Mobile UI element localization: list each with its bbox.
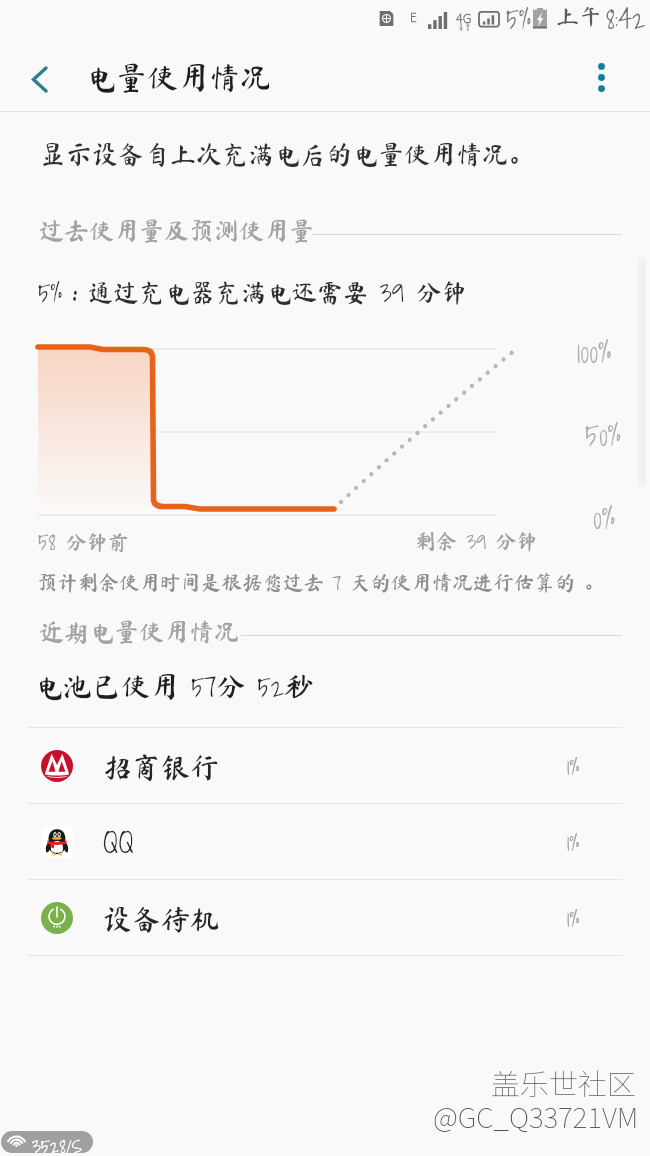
staticText: 剩余 39 分钟 (415, 524, 538, 558)
staticText: 电池已使用 57分 52秒 (34, 665, 314, 708)
staticText: 100% (577, 329, 612, 376)
staticText: 1% (567, 825, 580, 860)
button[interactable]: Back (11, 51, 67, 107)
button[interactable]: More options (575, 51, 627, 103)
staticText: 58 分钟前 (38, 524, 129, 559)
staticText: 招商银行 (103, 752, 220, 781)
staticText: @GC_Q33721VM (433, 1096, 639, 1137)
staticText: 显示设备自上次充满电后的电量使用情况。 (40, 141, 535, 167)
staticText: QQ (103, 818, 134, 866)
staticText: 上午 (556, 5, 602, 28)
staticText: 盖乐世社区 (491, 1061, 637, 1103)
button[interactable]: 设备待机 (0, 880, 650, 956)
staticText: 预计剩余使用时间是根据您过去 7 天的使用情况进行估算的 。 (37, 568, 605, 599)
staticText: 1% (567, 749, 580, 784)
staticText: 近期电量使用情况 (39, 619, 240, 644)
staticText: 1% (567, 901, 580, 936)
staticText: 5%：通过充电器充满电还需要 39 分钟 (38, 271, 467, 313)
staticText: 0% (593, 495, 616, 542)
staticText: 5% (506, 0, 532, 40)
staticText: 3528/S (32, 1131, 83, 1153)
staticText: 电量使用情况 (85, 62, 271, 93)
staticText: 50% (585, 412, 621, 459)
staticText: E (410, 8, 417, 25)
staticText: 4G (456, 8, 472, 27)
button[interactable]: 招商银行 (0, 728, 650, 804)
staticText: 8:42 (606, 0, 646, 40)
staticText: 设备待机 (103, 904, 220, 933)
staticText: 过去使用量及预测使用量 (39, 218, 315, 243)
button[interactable]: QQ (0, 804, 650, 880)
